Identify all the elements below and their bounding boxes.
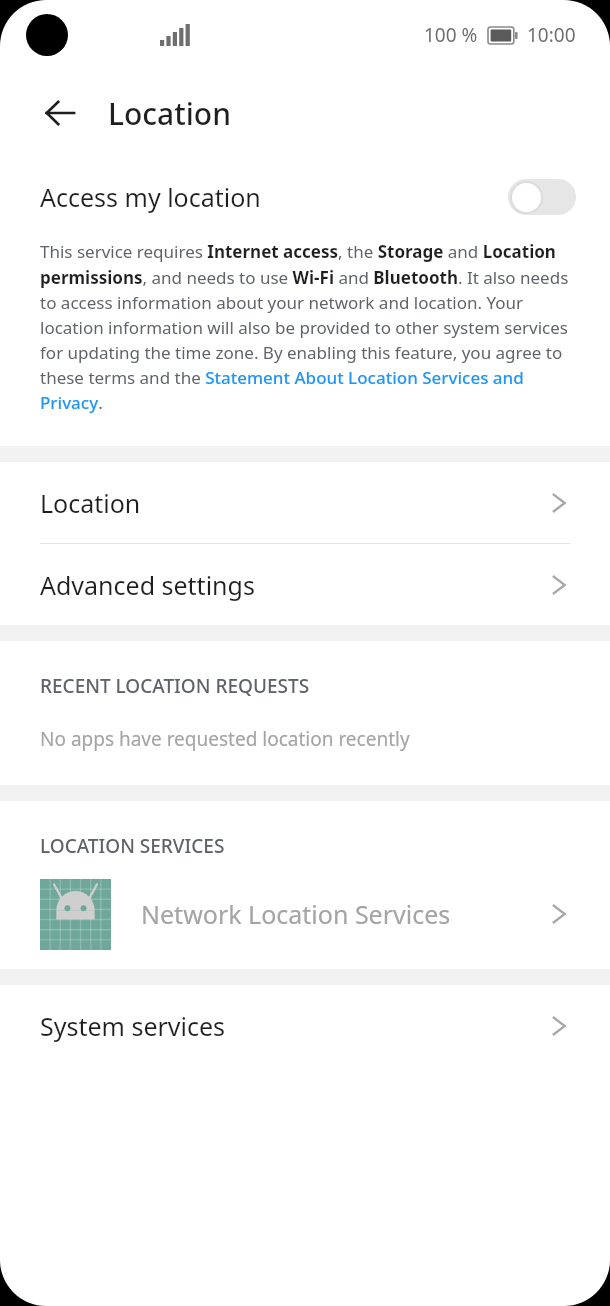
button[interactable]: System services xyxy=(0,985,610,1066)
button[interactable]: Location xyxy=(0,462,610,543)
staticText: Advanced settings xyxy=(40,568,546,602)
staticText: Network Location Services xyxy=(141,897,546,931)
staticText: This service requires Internet access, t… xyxy=(40,240,572,414)
button[interactable]: Advanced settings xyxy=(0,544,610,625)
staticText: LOCATION SERVICES xyxy=(40,833,225,859)
button[interactable]: Network Location Services xyxy=(0,859,610,969)
staticText: 100 % xyxy=(424,22,478,48)
staticText: Location xyxy=(40,486,546,520)
staticText: Access my location xyxy=(40,180,508,214)
staticText: 10:00 xyxy=(527,22,576,48)
staticText: Location xyxy=(108,93,231,134)
button[interactable]: Back xyxy=(34,87,86,139)
button[interactable]: Access my location xyxy=(0,156,610,238)
staticText: No apps have requested location recently xyxy=(40,726,410,752)
staticText: System services xyxy=(40,1009,546,1043)
staticText: RECENT LOCATION REQUESTS xyxy=(40,673,310,699)
